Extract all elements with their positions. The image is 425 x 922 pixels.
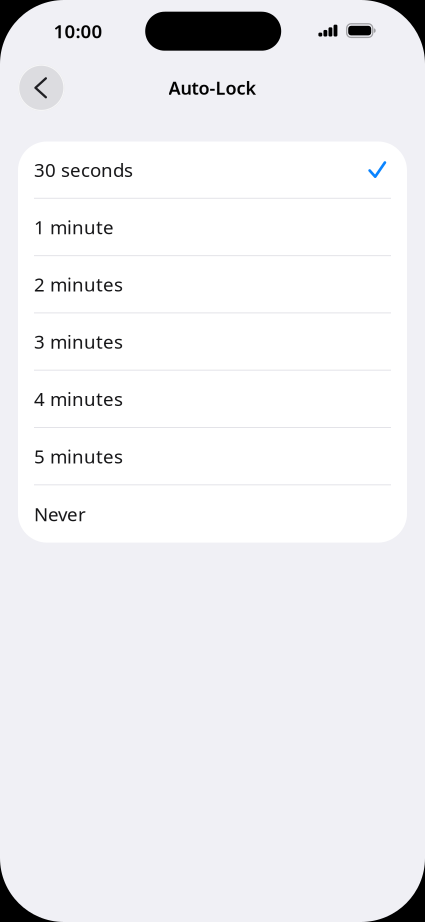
staticText: 5 minutes [34,443,123,469]
button[interactable]: 5 minutes [18,428,407,485]
staticText: 2 minutes [34,271,123,297]
staticText: Auto-Lock [168,75,256,100]
button[interactable]: 1 minute [18,199,407,256]
staticText: 1 minute [34,214,114,240]
button[interactable]: 4 minutes [18,371,407,428]
staticText: 30 seconds [34,157,133,182]
button[interactable]: Never [18,485,407,543]
staticText: Never [34,501,86,527]
button[interactable]: Back [18,64,64,111]
staticText: 10:00 [53,18,102,44]
staticText: 4 minutes [34,386,123,411]
button[interactable]: 30 seconds [18,141,407,199]
staticText: 3 minutes [34,329,123,354]
button[interactable]: 3 minutes [18,313,407,371]
button[interactable]: 2 minutes [18,256,407,313]
